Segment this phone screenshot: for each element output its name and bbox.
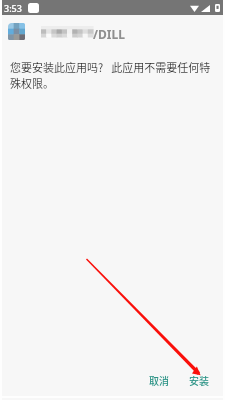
staticText: 3:53 [4, 2, 22, 14]
staticText: 安装 [189, 373, 209, 387]
other: Install pointer annotation [0, 0, 225, 400]
button[interactable]: 安装 [184, 369, 214, 391]
staticText: /DILL [93, 26, 125, 42]
staticText: 取消 [149, 373, 169, 387]
button[interactable]: 取消 [144, 369, 174, 391]
staticText: 您要安装此应用吗? 此应用不需要任何特殊权限。 [10, 59, 215, 91]
